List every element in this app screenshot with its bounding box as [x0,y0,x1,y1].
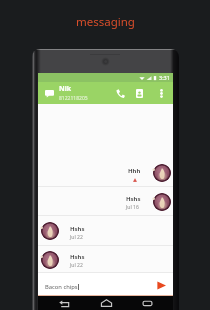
staticText: 8122118205 [59,95,88,102]
button[interactable]: More options [149,82,173,104]
button[interactable]: Call [111,82,130,104]
button[interactable]: Contact details [130,82,149,104]
button[interactable]: Hhh [38,158,173,187]
button[interactable]: Bacon chips [45,280,155,288]
button[interactable]: Hshs [38,246,173,273]
staticText: Hshs [70,225,85,233]
button[interactable]: Home [91,296,121,310]
staticText: Bacon chips [45,283,78,291]
staticText: Hhh [128,167,141,175]
button[interactable]: Send [155,276,167,292]
button[interactable]: Hshs [38,187,173,216]
button[interactable]: Back [49,296,79,310]
staticText: Hshs [126,195,141,203]
staticText: 3:31 [159,74,170,81]
button[interactable]: Hshs [38,216,173,246]
staticText: Jul 22 [70,234,83,241]
button[interactable]: Conversation [41,83,57,103]
staticText: Hshs [70,253,85,261]
staticText: Jul 22 [70,262,83,269]
staticText: messaging [76,14,135,30]
staticText: Nik [59,84,72,94]
staticText: Jul 16 [126,204,139,211]
button[interactable]: Recent apps [132,296,162,310]
